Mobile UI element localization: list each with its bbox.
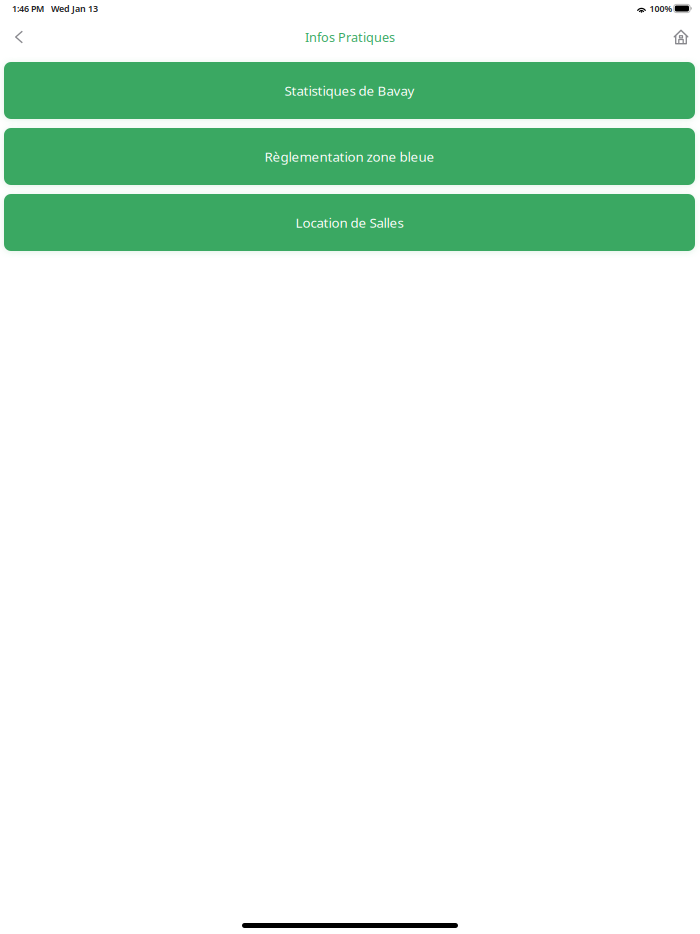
button[interactable]: Statistiques de Bavay — [4, 62, 695, 119]
staticText: Statistiques de Bavay — [284, 81, 414, 100]
staticText: 100% — [649, 2, 672, 14]
staticText: Location de Salles — [295, 213, 403, 232]
button[interactable]: Location de Salles — [4, 194, 695, 251]
button[interactable]: Règlementation zone bleue — [4, 128, 695, 185]
staticText: Wed Jan 13 — [51, 2, 98, 15]
button[interactable]: Back — [4, 21, 34, 53]
staticText: 1:46 PM — [12, 2, 44, 15]
staticText: Règlementation zone bleue — [264, 147, 434, 166]
staticText: Infos Pratiques — [305, 28, 395, 46]
button[interactable]: Home — [666, 21, 696, 53]
